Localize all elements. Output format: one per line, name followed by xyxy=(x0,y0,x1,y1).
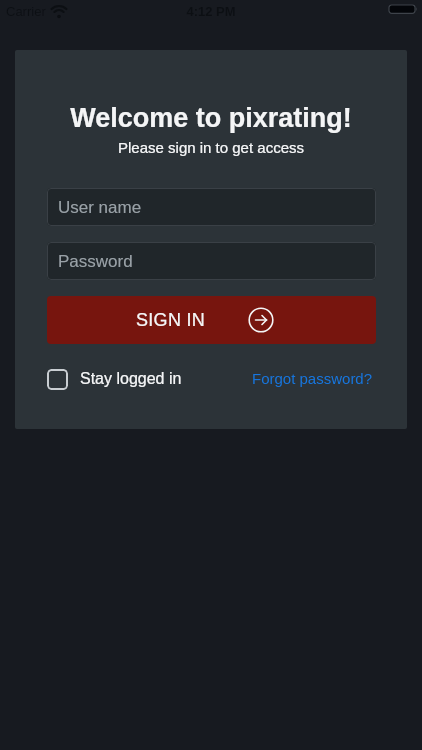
button[interactable]: SIGN IN xyxy=(47,296,376,344)
button[interactable]: Password xyxy=(47,242,376,280)
staticText: Welcome to pixrating! xyxy=(0,103,422,133)
staticText: Please sign in to get access xyxy=(0,139,422,156)
button[interactable]: User name xyxy=(47,188,376,226)
staticText: User name xyxy=(58,198,142,217)
button[interactable]: Forgot password? xyxy=(252,370,373,387)
staticText: Password xyxy=(58,252,133,271)
staticText: Carrier xyxy=(6,4,46,19)
button[interactable] xyxy=(47,369,68,390)
staticText: 4:12 PM xyxy=(0,4,422,19)
staticText: SIGN IN xyxy=(136,310,206,330)
button[interactable]: Stay logged in xyxy=(80,370,182,388)
